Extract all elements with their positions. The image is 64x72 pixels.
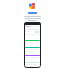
button[interactable] bbox=[25, 40, 40, 45]
button[interactable] bbox=[25, 26, 31, 27]
button[interactable] bbox=[25, 62, 40, 67]
button[interactable] bbox=[25, 55, 40, 60]
button[interactable] bbox=[25, 47, 40, 52]
button[interactable] bbox=[35, 31, 39, 33]
